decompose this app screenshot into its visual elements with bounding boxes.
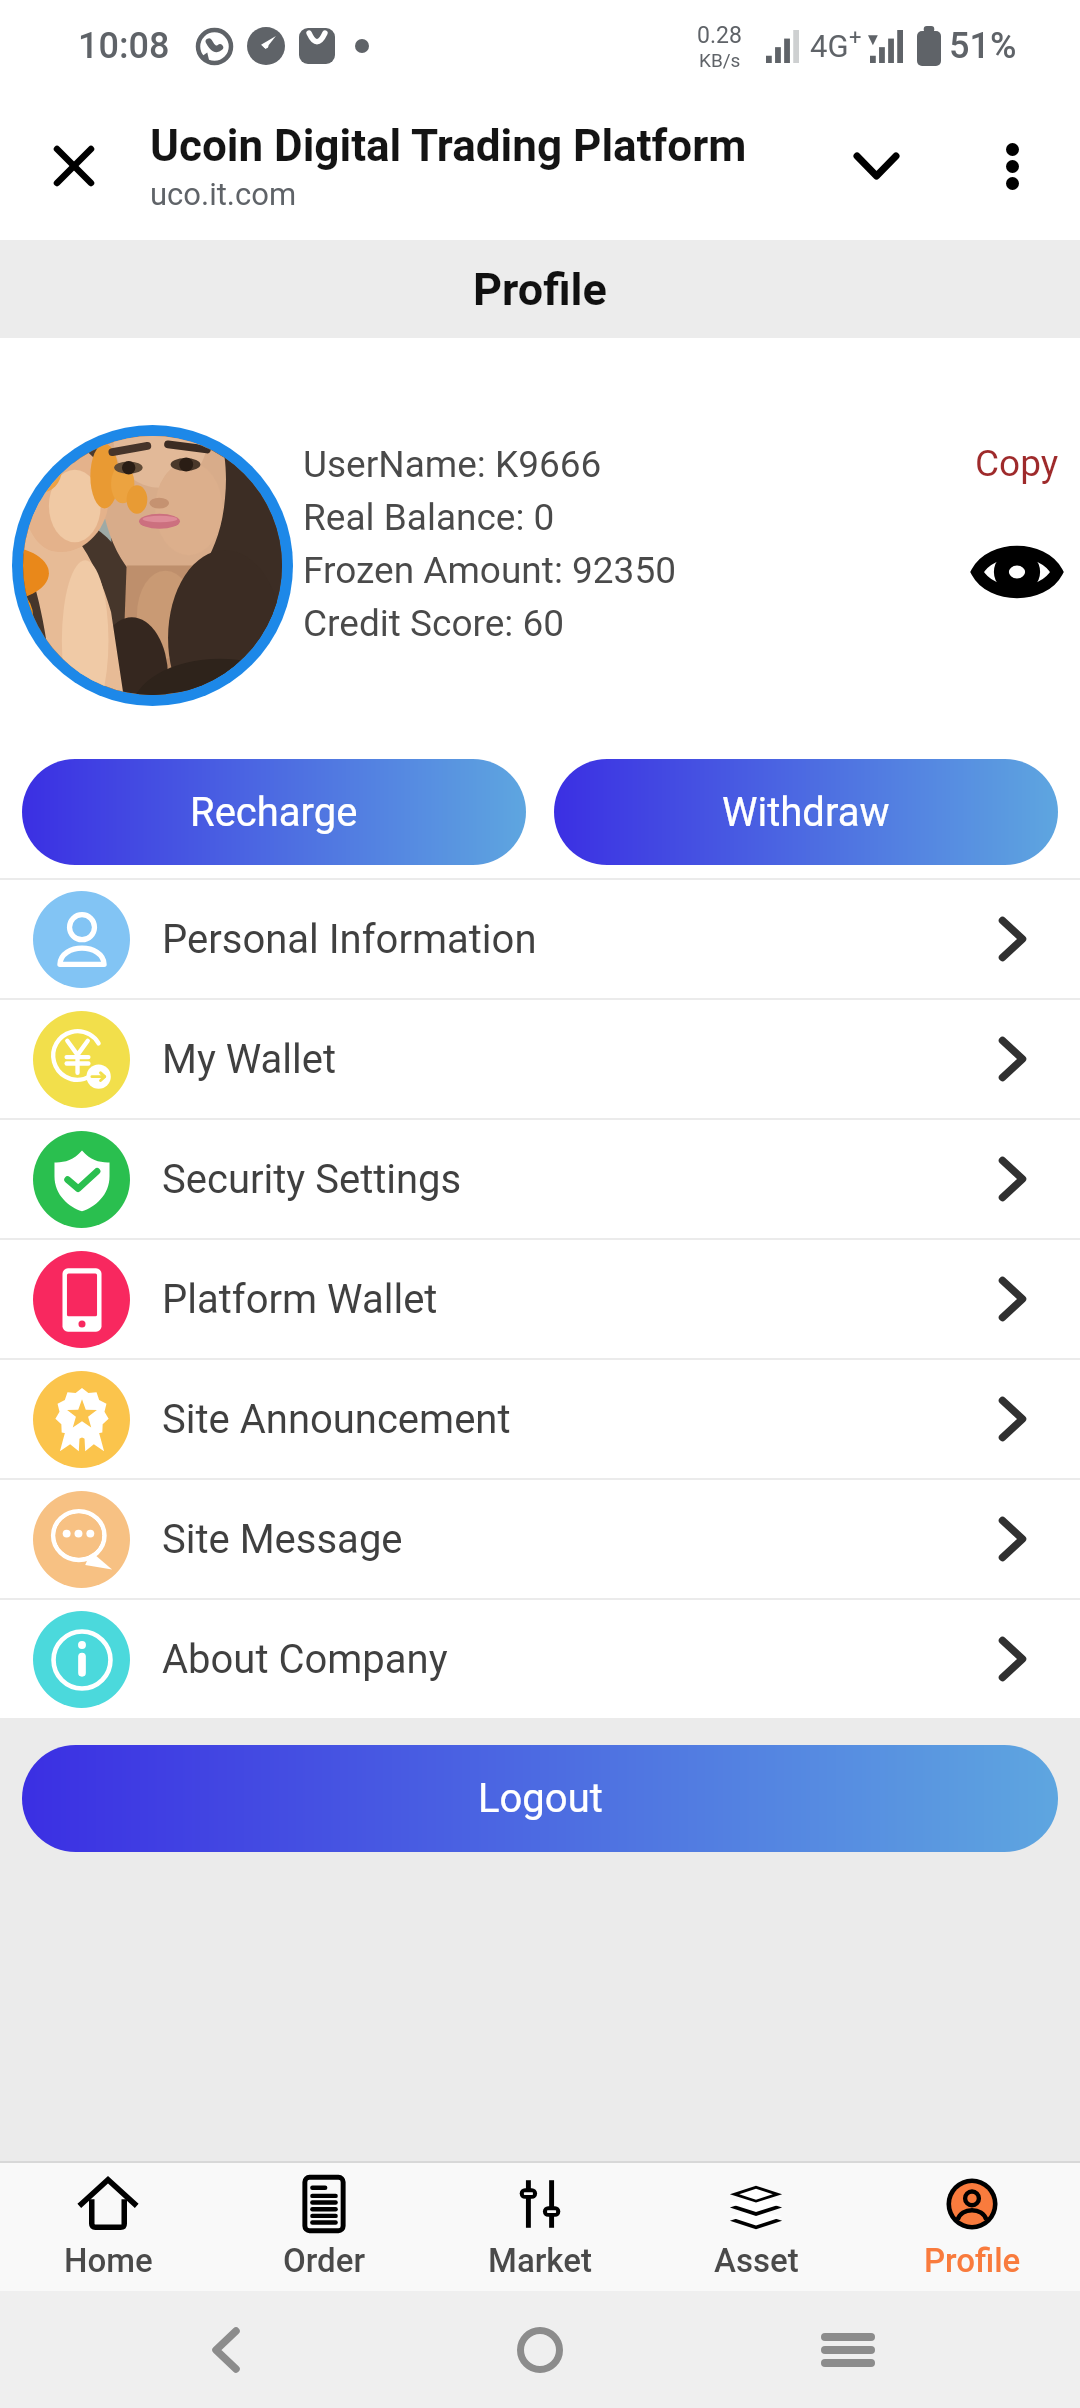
staticText: Order — [283, 2241, 366, 2280]
button[interactable]: Back — [168, 2292, 284, 2408]
button[interactable]: Site Announcement — [0, 1360, 1080, 1478]
button[interactable]: Logout — [22, 1745, 1058, 1852]
button[interactable]: Order — [216, 2163, 432, 2291]
staticText: Market — [488, 2241, 592, 2280]
staticText: Security Settings — [162, 1156, 462, 1203]
button[interactable]: Withdraw — [554, 759, 1058, 865]
button[interactable]: Profile — [864, 2163, 1080, 2291]
staticText: Frozen Amount: 92350 — [303, 549, 676, 592]
button[interactable]: Asset — [648, 2163, 864, 2291]
staticText: 51% — [949, 25, 1017, 67]
button[interactable]: Platform Wallet — [0, 1240, 1080, 1358]
button[interactable]: Security Settings — [0, 1120, 1080, 1238]
button[interactable]: Copy — [969, 438, 1065, 489]
button[interactable]: Home — [0, 2163, 216, 2291]
staticText: 10:08 — [78, 25, 170, 67]
button[interactable]: My Wallet — [0, 1000, 1080, 1118]
button[interactable]: Recent apps — [790, 2292, 906, 2408]
button[interactable]: Toggle balance visibility — [967, 522, 1067, 622]
staticText: Ucoin Digital Trading Platform — [150, 120, 747, 172]
staticText: KB/s — [699, 49, 741, 71]
staticText: My Wallet — [162, 1036, 337, 1083]
staticText: Platform Wallet — [162, 1276, 438, 1323]
staticText: Credit Score: 60 — [303, 602, 565, 645]
staticText: uco.it.com — [150, 176, 297, 212]
button[interactable]: About Company — [0, 1600, 1080, 1718]
button[interactable]: Recharge — [22, 759, 526, 865]
staticText: About Company — [162, 1636, 448, 1683]
button[interactable]: Close — [26, 118, 122, 214]
button[interactable]: Home — [482, 2292, 598, 2408]
staticText: Real Balance: 0 — [303, 496, 555, 539]
staticText: Recharge — [190, 789, 358, 836]
staticText: Logout — [478, 1775, 603, 1822]
staticText: Profile — [473, 263, 607, 316]
button[interactable]: Expand — [830, 120, 922, 212]
staticText: Copy — [975, 442, 1059, 485]
staticText: Site Message — [162, 1516, 403, 1563]
button[interactable]: Market — [432, 2163, 648, 2291]
button[interactable]: Site Message — [0, 1480, 1080, 1598]
staticText: Home — [64, 2241, 153, 2280]
button[interactable]: More options — [966, 120, 1058, 212]
button[interactable]: Personal Information — [0, 880, 1080, 998]
staticText: Withdraw — [722, 789, 890, 836]
staticText: + — [849, 25, 862, 51]
staticText: Personal Information — [162, 916, 537, 963]
staticText: UserName: K9666 — [303, 443, 602, 486]
staticText: 0.28 — [697, 22, 742, 49]
staticText: 4G — [810, 28, 849, 64]
staticText: Profile — [924, 2241, 1021, 2280]
staticText: Asset — [714, 2241, 799, 2280]
staticText: Site Announcement — [162, 1396, 511, 1443]
